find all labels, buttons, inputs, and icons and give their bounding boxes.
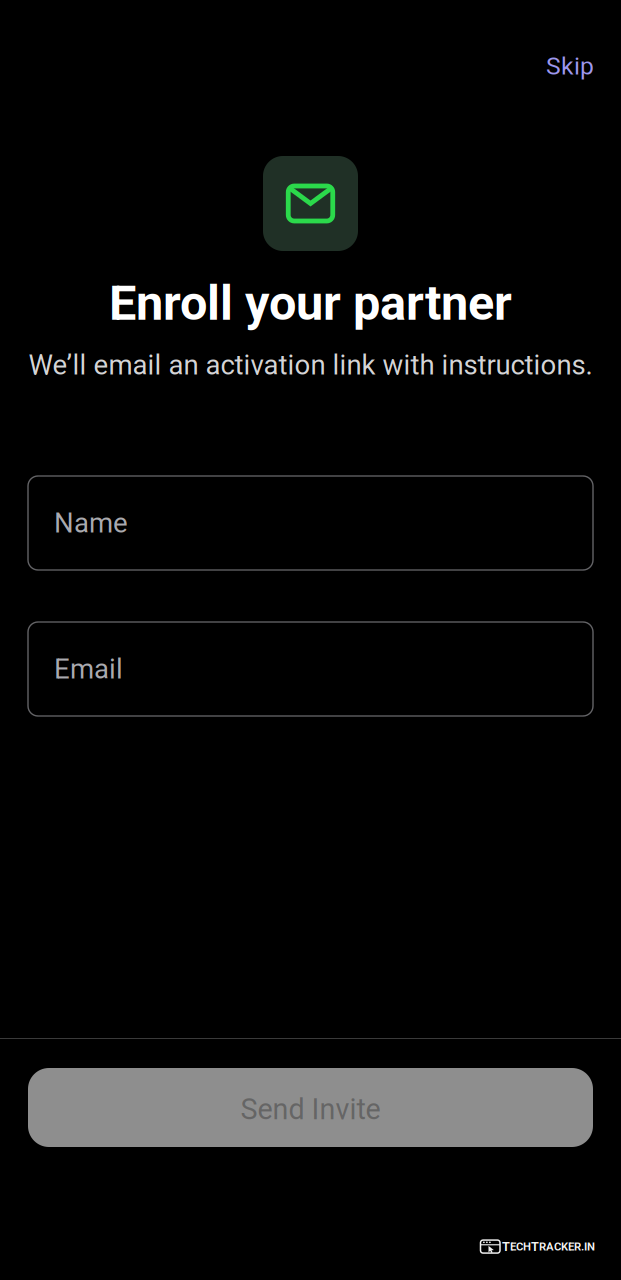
staticText: . — [581, 1240, 584, 1253]
staticText: Email — [54, 653, 123, 685]
staticText: Skip — [546, 51, 594, 80]
button[interactable]: Name — [28, 476, 593, 570]
staticText: IN — [584, 1240, 595, 1253]
button[interactable]: Skip — [536, 49, 604, 83]
staticText: We’ll email an activation link with inst… — [28, 349, 592, 381]
button[interactable]: Email — [28, 622, 593, 716]
staticText: Name — [54, 507, 128, 539]
staticText: ECH — [510, 1240, 531, 1253]
staticText: T — [531, 1239, 539, 1254]
staticText: Enroll your partner — [109, 274, 512, 331]
staticText: T — [502, 1239, 510, 1254]
staticText: RACKER — [539, 1240, 581, 1253]
button[interactable]: Send Invite — [28, 1068, 593, 1147]
staticText: Send Invite — [240, 1093, 380, 1126]
